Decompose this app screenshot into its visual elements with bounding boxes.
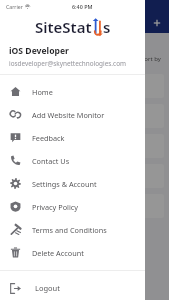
button[interactable]: Privacy Policy [0, 195, 145, 218]
button[interactable] [5, 74, 164, 98]
staticText: iOS Developer [9, 45, 69, 57]
staticText: Add Website Monitor [32, 110, 105, 120]
button[interactable]: Terms and Conditions [0, 218, 145, 241]
button[interactable] [5, 164, 164, 188]
button[interactable]: Delete Account [0, 241, 145, 264]
staticText: s [103, 17, 111, 37]
staticText: Logout [35, 283, 60, 293]
button[interactable]: Feedback [0, 126, 145, 149]
staticText: iosdeveloper@skynettechnologies.com [9, 59, 126, 68]
staticText: Terms and Conditions [32, 225, 107, 235]
button[interactable]: Contact Us [0, 149, 145, 172]
button[interactable]: Home [0, 80, 145, 103]
staticText: SiteStat [35, 17, 92, 37]
button[interactable]: Add Website Monitor [0, 103, 145, 126]
button[interactable]: Logout [0, 277, 145, 299]
staticText: Home [32, 87, 53, 97]
staticText: 6:40 PM [72, 3, 93, 10]
staticText: Feedback [32, 133, 65, 143]
staticText: Delete Account [32, 248, 84, 258]
staticText: Settings & Account [32, 179, 97, 189]
button[interactable] [5, 134, 164, 158]
staticText: Contact Us [32, 156, 70, 166]
staticText: Sort by [141, 55, 161, 63]
button[interactable]: Add [152, 18, 162, 28]
staticText: Carrier [6, 3, 23, 10]
staticText: Privacy Policy [32, 202, 79, 212]
button[interactable] [5, 194, 164, 218]
button[interactable] [5, 104, 164, 128]
button[interactable]: Settings & Account [0, 172, 145, 195]
